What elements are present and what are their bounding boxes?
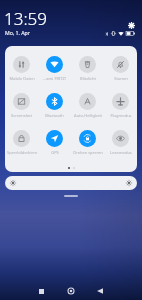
staticText: ...ami FRITZ! xyxy=(43,76,66,81)
staticText: Mobile Daten xyxy=(9,76,35,81)
staticText: Screenshot xyxy=(11,113,32,118)
staticText: GPS xyxy=(51,150,59,155)
button[interactable]: Home xyxy=(62,282,80,300)
staticText: Lesemodus xyxy=(110,150,132,155)
staticText: Drehen sperren xyxy=(73,150,103,155)
button[interactable]: Brightness xyxy=(5,176,137,190)
button[interactable]: Screenshot xyxy=(5,93,38,118)
button[interactable]: Settings xyxy=(125,19,138,32)
button[interactable]: Mobile Daten xyxy=(5,56,38,81)
staticText: Bluetooth xyxy=(45,113,64,118)
staticText: Flugmodus xyxy=(110,113,132,118)
button[interactable]: Blitzlicht xyxy=(71,56,104,81)
button[interactable]: Stumm xyxy=(104,56,137,81)
button[interactable]: Drehen sperren xyxy=(71,130,104,155)
button[interactable]: Flugmodus xyxy=(104,93,137,118)
staticText: 13:59 xyxy=(4,7,47,30)
staticText: Stumm xyxy=(114,76,128,81)
staticText: Blitzlicht xyxy=(80,76,96,81)
button[interactable]: ...ami FRITZ! xyxy=(38,56,71,81)
staticText: Auto-Helligkeit xyxy=(74,113,102,118)
button[interactable]: Lesemodus xyxy=(104,130,137,155)
staticText: Mo, 1. Apr xyxy=(5,29,30,36)
staticText: Sperrbildschirm xyxy=(7,150,37,155)
button[interactable]: Auto-Helligkeit xyxy=(71,93,104,118)
button[interactable]: GPS xyxy=(38,130,71,155)
button[interactable]: Back xyxy=(91,282,109,300)
button[interactable]: Sperrbildschirm xyxy=(5,130,38,155)
button[interactable]: Recents xyxy=(32,282,50,300)
button[interactable]: Bluetooth xyxy=(38,93,71,118)
